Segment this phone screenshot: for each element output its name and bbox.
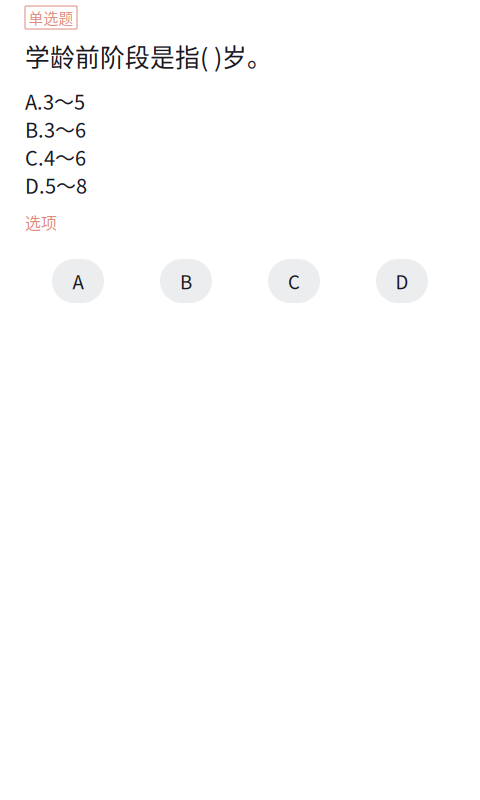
staticText: B xyxy=(180,267,192,294)
staticText: A.3～5 xyxy=(25,86,85,115)
staticText: 学龄前阶段是指( )岁。 xyxy=(25,38,272,74)
staticText: 选项 xyxy=(25,210,57,234)
staticText: C.4～6 xyxy=(25,142,86,171)
button[interactable]: D xyxy=(376,259,428,303)
staticText: C xyxy=(288,267,300,294)
staticText: D.5～8 xyxy=(25,170,87,199)
button[interactable]: A xyxy=(52,259,104,303)
staticText: 单选题 xyxy=(28,7,73,28)
staticText: D xyxy=(395,267,408,294)
button[interactable]: B xyxy=(160,259,212,303)
staticText: B.3～6 xyxy=(25,114,86,143)
staticText: A xyxy=(72,267,83,294)
button[interactable]: C xyxy=(268,259,320,303)
